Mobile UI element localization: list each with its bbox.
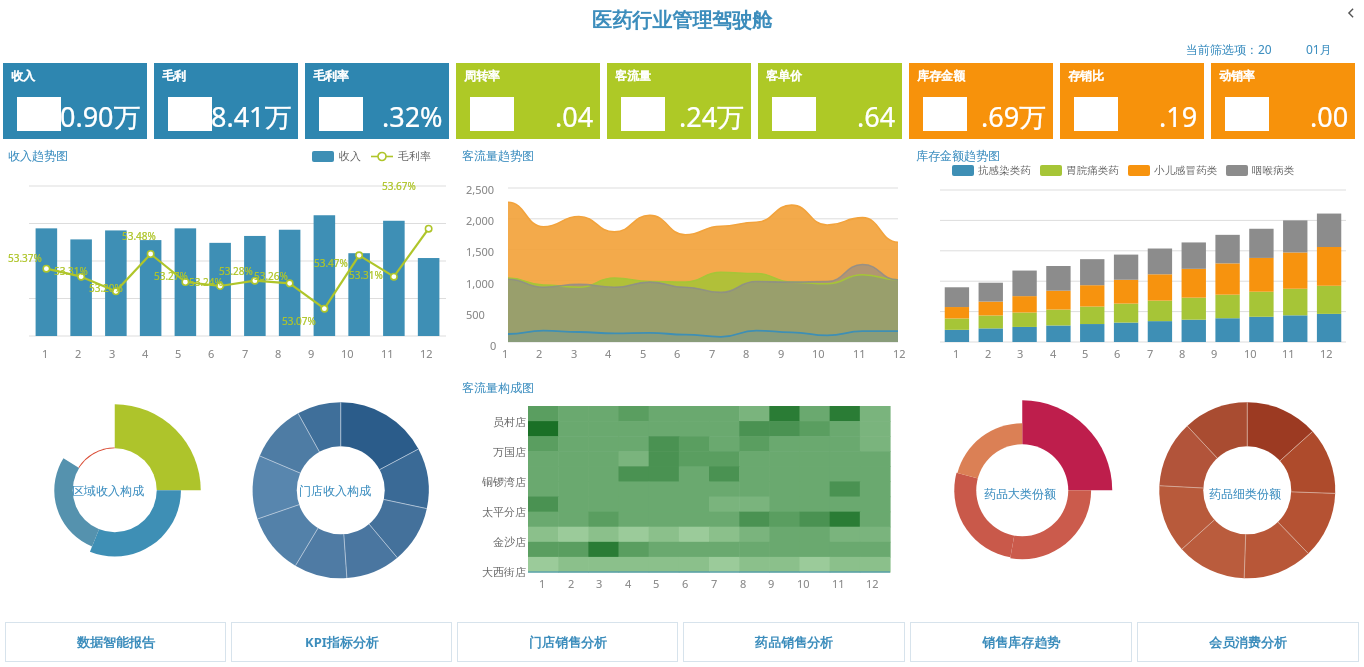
button[interactable]: 动销率 (1211, 63, 1355, 139)
staticText: 6 (674, 346, 681, 361)
staticText: 53.20% (89, 281, 123, 295)
staticText: 4 (142, 346, 149, 361)
staticText: 8 (1179, 346, 1186, 361)
staticText: 8 (275, 346, 282, 361)
staticText: 5 (640, 346, 647, 361)
staticText: 门店销售分析 (529, 634, 607, 650)
button[interactable]: 库存金额 (909, 63, 1053, 139)
staticText: 库存金额 (917, 68, 965, 83)
staticText: 客流量构成图 (462, 380, 534, 395)
staticText: 6 (682, 576, 689, 591)
staticText: 53.31% (54, 264, 88, 278)
staticText: 2,000 (466, 213, 495, 228)
staticText: 6 (1114, 346, 1121, 361)
staticText: 11 (832, 576, 845, 591)
staticText: KPI指标分析 (305, 633, 379, 651)
staticText: 53.47% (314, 256, 348, 270)
staticText: 4 (1050, 346, 1057, 361)
staticText: 5 (653, 576, 660, 591)
staticText: 8 (743, 346, 750, 361)
button[interactable]: 数据智能报告 (5, 622, 226, 662)
staticText: 客流量趋势图 (462, 148, 534, 163)
staticText: 5 (175, 346, 182, 361)
staticText: 2 (568, 576, 575, 591)
staticText: 毛利 (162, 68, 186, 83)
staticText: 11 (1282, 346, 1295, 361)
button[interactable]: KPI指标分析 (231, 622, 452, 662)
staticText: 1 (502, 346, 509, 361)
staticText: 销售库存趋势 (982, 634, 1060, 650)
button[interactable]: 周转率 (456, 63, 600, 139)
button[interactable]: 毛利 (154, 63, 298, 139)
staticText: 53.27% (154, 269, 188, 283)
staticText: .64 (857, 98, 896, 135)
staticText: 2 (75, 346, 82, 361)
staticText: 12 (893, 346, 906, 361)
staticText: 员村店 (468, 415, 526, 429)
staticText: 2 (985, 346, 992, 361)
staticText: 1,500 (466, 244, 495, 259)
staticText: 53.24% (189, 275, 223, 289)
staticText: 10 (341, 346, 354, 361)
staticText: 12 (420, 346, 433, 361)
staticText: 太平分店 (468, 505, 526, 519)
staticText: 53.31% (349, 268, 383, 282)
staticText: 10 (1244, 346, 1257, 361)
staticText: 2,500 (466, 182, 495, 197)
button[interactable]: 收入 (3, 63, 147, 139)
staticText: .19 (1159, 98, 1198, 135)
staticText: 数据智能报告 (77, 634, 155, 650)
staticText: 500 (466, 307, 485, 322)
staticText: 9 (308, 346, 315, 361)
staticText: 7 (242, 346, 249, 361)
button[interactable]: 门店销售分析 (457, 622, 678, 662)
staticText: 小儿感冒药类 (1154, 164, 1217, 177)
staticText: 4 (625, 576, 632, 591)
staticText: 7 (711, 576, 718, 591)
staticText: 周转率 (464, 68, 500, 83)
staticText: 铜锣湾店 (468, 475, 526, 489)
staticText: 0 (490, 338, 497, 353)
staticText: 抗感染类药 (978, 164, 1031, 177)
staticText: 万国店 (468, 445, 526, 459)
button[interactable]: 客流量 (607, 63, 751, 139)
button[interactable]: 会员消费分析 (1137, 622, 1359, 662)
staticText: 9 (778, 346, 785, 361)
staticText: 毛利率 (313, 68, 349, 83)
staticText: 客单价 (766, 68, 802, 83)
staticText: 53.48% (122, 229, 156, 243)
staticText: 7 (1147, 346, 1154, 361)
staticText: .00 (1310, 98, 1349, 135)
staticText: 5 (1082, 346, 1089, 361)
staticText: .69万 (981, 98, 1047, 135)
staticText: 门店收入构成 (299, 483, 371, 498)
staticText: 11 (381, 346, 394, 361)
staticText: 12 (1320, 346, 1333, 361)
staticText: 53.28% (219, 264, 253, 278)
staticText: 库存金额趋势图 (916, 148, 1000, 163)
staticText: 当前筛选项：20 (1186, 41, 1272, 57)
staticText: 3 (109, 346, 116, 361)
staticText: 动销率 (1219, 68, 1255, 83)
staticText: 大西街店 (468, 565, 526, 579)
staticText: 11 (853, 346, 866, 361)
button[interactable]: 毛利率 (305, 63, 449, 139)
staticText: 药品销售分析 (755, 634, 833, 650)
staticText: .32% (382, 98, 443, 135)
button[interactable]: 销售库存趋势 (910, 622, 1132, 662)
staticText: 会员消费分析 (1209, 634, 1287, 650)
staticText: 10 (797, 576, 810, 591)
staticText: 医药行业管理驾驶舱 (592, 8, 772, 33)
staticText: 存销比 (1068, 68, 1104, 83)
staticText: 1 (42, 346, 49, 361)
staticText: 53.26% (254, 269, 288, 283)
button[interactable]: 客单价 (758, 63, 902, 139)
button[interactable]: Back (1342, 4, 1360, 22)
staticText: 8.41万 (211, 98, 292, 135)
staticText: 咽喉病类 (1252, 164, 1294, 177)
button[interactable]: 存销比 (1060, 63, 1204, 139)
staticText: 53.07% (282, 314, 316, 328)
staticText: 1 (953, 346, 960, 361)
staticText: 9 (1211, 346, 1218, 361)
button[interactable]: 药品销售分析 (683, 622, 905, 662)
